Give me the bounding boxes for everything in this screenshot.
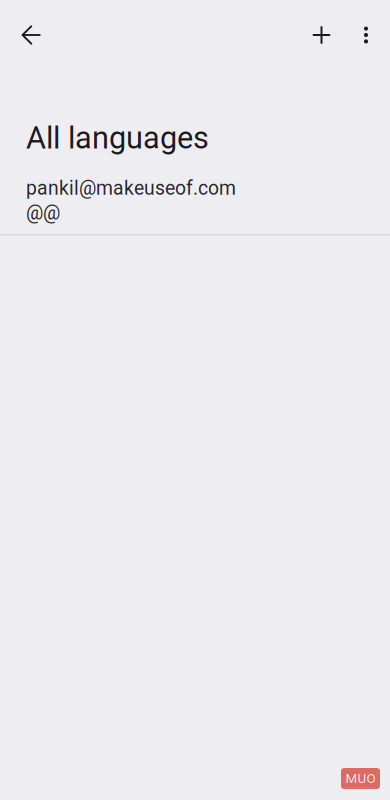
button[interactable]: More options: [344, 6, 388, 50]
staticText: MUO: [345, 771, 375, 786]
button[interactable]: Add language: [300, 6, 344, 50]
staticText: pankil@makeuseof.com: [26, 177, 236, 200]
staticText: All languages: [26, 120, 209, 156]
staticText: @@: [26, 202, 60, 224]
button[interactable]: Back: [9, 6, 53, 50]
